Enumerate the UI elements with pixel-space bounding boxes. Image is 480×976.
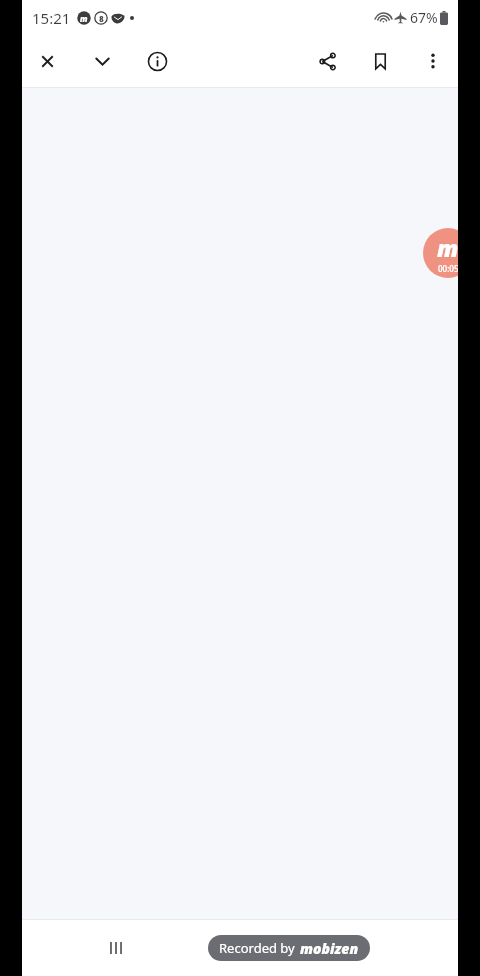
button[interactable]: Bookmark	[358, 39, 402, 83]
button[interactable]: Share	[305, 39, 349, 83]
button[interactable]: More options	[411, 39, 455, 83]
button[interactable]: Recents	[94, 926, 138, 970]
staticText: m	[80, 13, 88, 24]
staticText: 8	[99, 13, 104, 24]
button[interactable]: Close	[25, 39, 69, 83]
staticText: 67%	[410, 8, 438, 27]
staticText: 15:21	[32, 8, 71, 28]
staticText: m	[437, 232, 459, 263]
button[interactable]: Information	[135, 39, 179, 83]
staticText: mobizen	[300, 939, 359, 958]
staticText: 00:05	[438, 263, 459, 274]
button[interactable]: Collapse	[80, 39, 124, 83]
button[interactable]: Mobizen recorder controls	[423, 228, 473, 278]
staticText: Recorded by	[219, 939, 295, 957]
